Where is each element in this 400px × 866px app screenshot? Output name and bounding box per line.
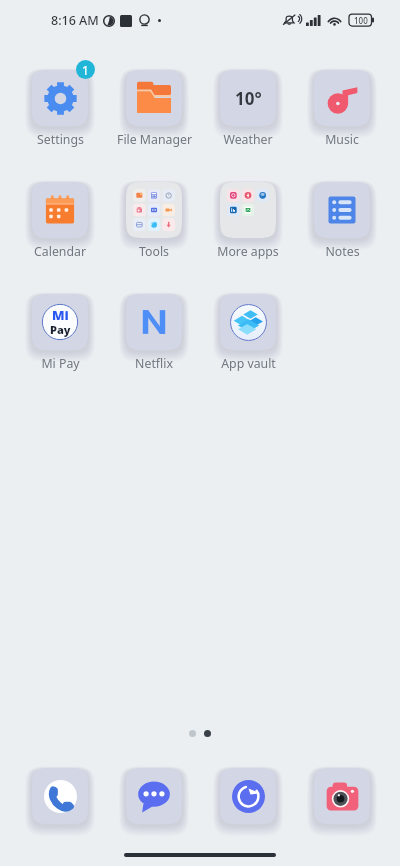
staticText: More apps [217,243,279,260]
button[interactable]: Mi [17,289,103,372]
button[interactable]: App vault [205,289,291,372]
staticText: 10° [235,87,262,110]
button[interactable]: Phone [27,763,93,829]
button[interactable]: Browser [215,763,281,829]
staticText: Settings [37,131,84,148]
staticText: Mi Pay [41,355,80,372]
staticText: Music [325,131,359,148]
button[interactable]: Notes [299,177,385,260]
button[interactable]: Messages [121,763,187,829]
button[interactable]: More apps [205,177,291,260]
staticText: 8:16 AM [51,12,99,29]
staticText: Tools [139,243,169,260]
button[interactable]: 10° [205,65,291,148]
button[interactable]: Calendar [17,177,103,260]
button[interactable]: Camera [309,763,375,829]
button[interactable]: File Manager [111,65,197,148]
button[interactable]: Tools [111,177,197,260]
staticText: 1 [82,62,89,78]
staticText: Netflix [135,355,173,372]
staticText: Calendar [34,243,86,260]
button[interactable]: Settings [17,65,103,148]
staticText: File Manager [117,131,192,148]
staticText: Notes [325,243,360,260]
staticText: Pay [50,322,71,337]
button[interactable]: Netflix [111,289,197,372]
staticText: Mi [52,306,69,324]
button[interactable]: Music [299,65,385,148]
staticText: 100 [354,15,368,26]
staticText: App vault [221,355,276,372]
staticText: Weather [223,131,273,148]
